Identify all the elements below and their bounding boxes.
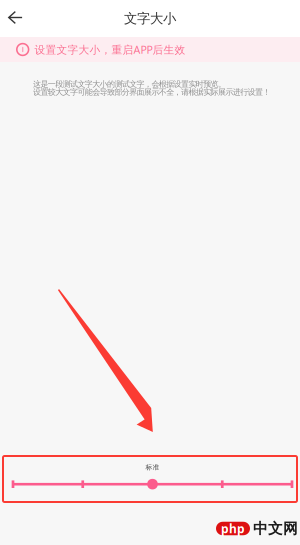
staticText: 标准 (145, 463, 159, 471)
staticText: 中文网 (253, 519, 298, 538)
staticText: 设置较大文字可能会导致部分界面展示不全，请根据实际展示进行设置！ (33, 87, 270, 97)
staticText: 设置文字大小，重启APP后生效 (34, 42, 185, 57)
staticText: 文字大小 (124, 10, 176, 27)
staticText: 这是一段测试文字大小的测试文字，会根据设置实时预览。 (33, 79, 226, 89)
button[interactable]: 标准 (3, 456, 297, 502)
staticText: php (221, 520, 245, 537)
button[interactable]: Back (0, 2, 30, 32)
